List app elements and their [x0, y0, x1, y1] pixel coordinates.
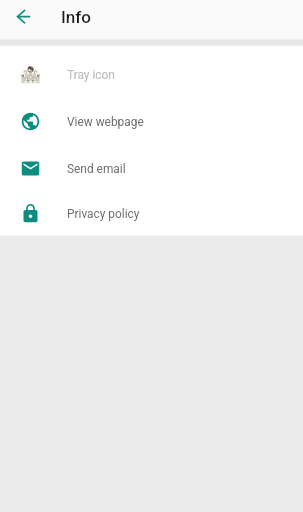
button[interactable]: Back: [15, 5, 38, 28]
staticText: Tray icon: [67, 68, 115, 82]
button[interactable]: Send email: [0, 145, 303, 192]
button[interactable]: Tray icon: [0, 51, 303, 98]
button[interactable]: View webpage: [0, 98, 303, 145]
staticText: Privacy policy: [67, 207, 140, 221]
staticText: Info: [61, 7, 91, 27]
staticText: Send email: [67, 162, 126, 176]
button[interactable]: Privacy policy: [0, 192, 303, 235]
staticText: View webpage: [67, 115, 144, 129]
